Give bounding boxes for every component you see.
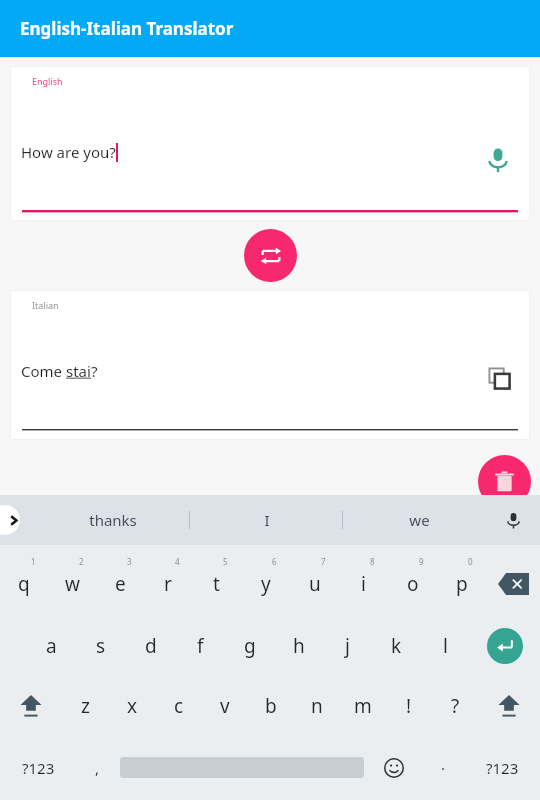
button[interactable]: j <box>323 615 372 677</box>
staticText: 8 <box>370 556 375 567</box>
staticText: 1 <box>31 556 36 567</box>
button[interactable]: we <box>343 495 496 545</box>
staticText: n <box>311 693 323 719</box>
button[interactable]: 2 <box>48 545 96 615</box>
button[interactable]: k <box>372 615 421 677</box>
button[interactable]: Italian <box>10 290 530 440</box>
staticText: · <box>441 758 446 778</box>
staticText: q <box>18 571 30 597</box>
button[interactable]: 4 <box>144 545 192 615</box>
button[interactable]: Voice input <box>480 142 516 178</box>
button[interactable]: · <box>422 735 464 800</box>
button[interactable]: 8 <box>339 545 388 615</box>
button[interactable]: ?123 <box>0 735 76 800</box>
staticText: v <box>220 693 230 719</box>
button[interactable]: Voice typing <box>498 505 528 535</box>
button[interactable]: 1 <box>0 545 48 615</box>
staticText: English <box>32 75 63 87</box>
button[interactable]: 5 <box>192 545 241 615</box>
staticText: ? <box>451 693 460 719</box>
button[interactable]: Backspace <box>486 545 540 615</box>
staticText: w <box>65 571 80 597</box>
button[interactable]: Emoji <box>366 735 422 800</box>
staticText: 3 <box>127 556 132 567</box>
button[interactable]: , <box>76 735 118 800</box>
staticText: 9 <box>419 556 424 567</box>
staticText: k <box>391 633 402 659</box>
button[interactable]: ?123 <box>464 735 540 800</box>
button[interactable]: Expand suggestions <box>0 505 20 535</box>
staticText: j <box>345 633 350 659</box>
staticText: f <box>197 633 204 659</box>
staticText: English-Italian Translator <box>20 17 234 40</box>
staticText: y <box>261 571 271 597</box>
button[interactable]: Space <box>120 735 364 800</box>
staticText: e <box>115 571 126 597</box>
staticText: d <box>145 633 157 659</box>
button[interactable]: l <box>421 615 470 677</box>
button[interactable]: v <box>202 677 248 735</box>
staticText: t <box>213 571 220 597</box>
staticText: 5 <box>223 556 228 567</box>
button[interactable]: h <box>274 615 323 677</box>
button[interactable]: d <box>126 615 176 677</box>
staticText: 7 <box>321 556 326 567</box>
button[interactable]: 6 <box>241 545 290 615</box>
staticText: I <box>264 510 270 530</box>
staticText: How are you? <box>21 142 116 162</box>
button[interactable]: I <box>190 495 343 545</box>
staticText: ! <box>406 693 412 719</box>
button[interactable]: English <box>10 66 530 221</box>
button[interactable]: m <box>340 677 386 735</box>
staticText: Italian <box>32 299 59 311</box>
button[interactable]: thanks <box>36 495 190 545</box>
button[interactable]: 3 <box>96 545 144 615</box>
staticText: b <box>265 693 277 719</box>
staticText: g <box>244 633 256 659</box>
staticText: 6 <box>272 556 277 567</box>
staticText: z <box>81 693 90 719</box>
button[interactable]: Copy translation <box>482 361 516 395</box>
staticText: 2 <box>79 556 84 567</box>
button[interactable]: Shift <box>478 677 540 735</box>
staticText: s <box>96 633 106 659</box>
button[interactable]: ! <box>386 677 432 735</box>
button[interactable]: g <box>225 615 274 677</box>
staticText: ?123 <box>486 758 519 778</box>
staticText: ?123 <box>22 758 55 778</box>
button[interactable]: x <box>109 677 156 735</box>
staticText: h <box>293 633 305 659</box>
button[interactable]: s <box>76 615 126 677</box>
button[interactable]: f <box>176 615 225 677</box>
button[interactable]: n <box>294 677 340 735</box>
button[interactable]: 0 <box>437 545 486 615</box>
staticText: 4 <box>175 556 180 567</box>
staticText: m <box>354 693 372 719</box>
button[interactable]: 9 <box>388 545 437 615</box>
staticText: stai <box>66 361 91 381</box>
staticText: a <box>46 633 57 659</box>
button[interactable]: b <box>248 677 294 735</box>
button[interactable]: 7 <box>290 545 339 615</box>
button[interactable]: a <box>26 615 76 677</box>
button[interactable]: c <box>156 677 202 735</box>
button[interactable]: Shift <box>0 677 62 735</box>
button[interactable]: Enter <box>470 615 540 677</box>
staticText: c <box>174 693 184 719</box>
staticText: Come <box>21 361 66 381</box>
staticText: x <box>127 693 138 719</box>
button[interactable]: ? <box>432 677 478 735</box>
staticText: i <box>361 571 366 597</box>
staticText: r <box>164 571 172 597</box>
button[interactable]: Swap languages <box>244 229 297 282</box>
staticText: l <box>443 633 448 659</box>
staticText: 0 <box>468 556 473 567</box>
staticText: we <box>409 510 430 530</box>
staticText: o <box>407 571 419 597</box>
staticText: thanks <box>89 510 137 530</box>
staticText: u <box>309 571 321 597</box>
button[interactable]: Clear text <box>478 455 531 508</box>
button[interactable]: z <box>62 677 109 735</box>
staticText: , <box>95 758 100 778</box>
staticText: p <box>456 571 468 597</box>
